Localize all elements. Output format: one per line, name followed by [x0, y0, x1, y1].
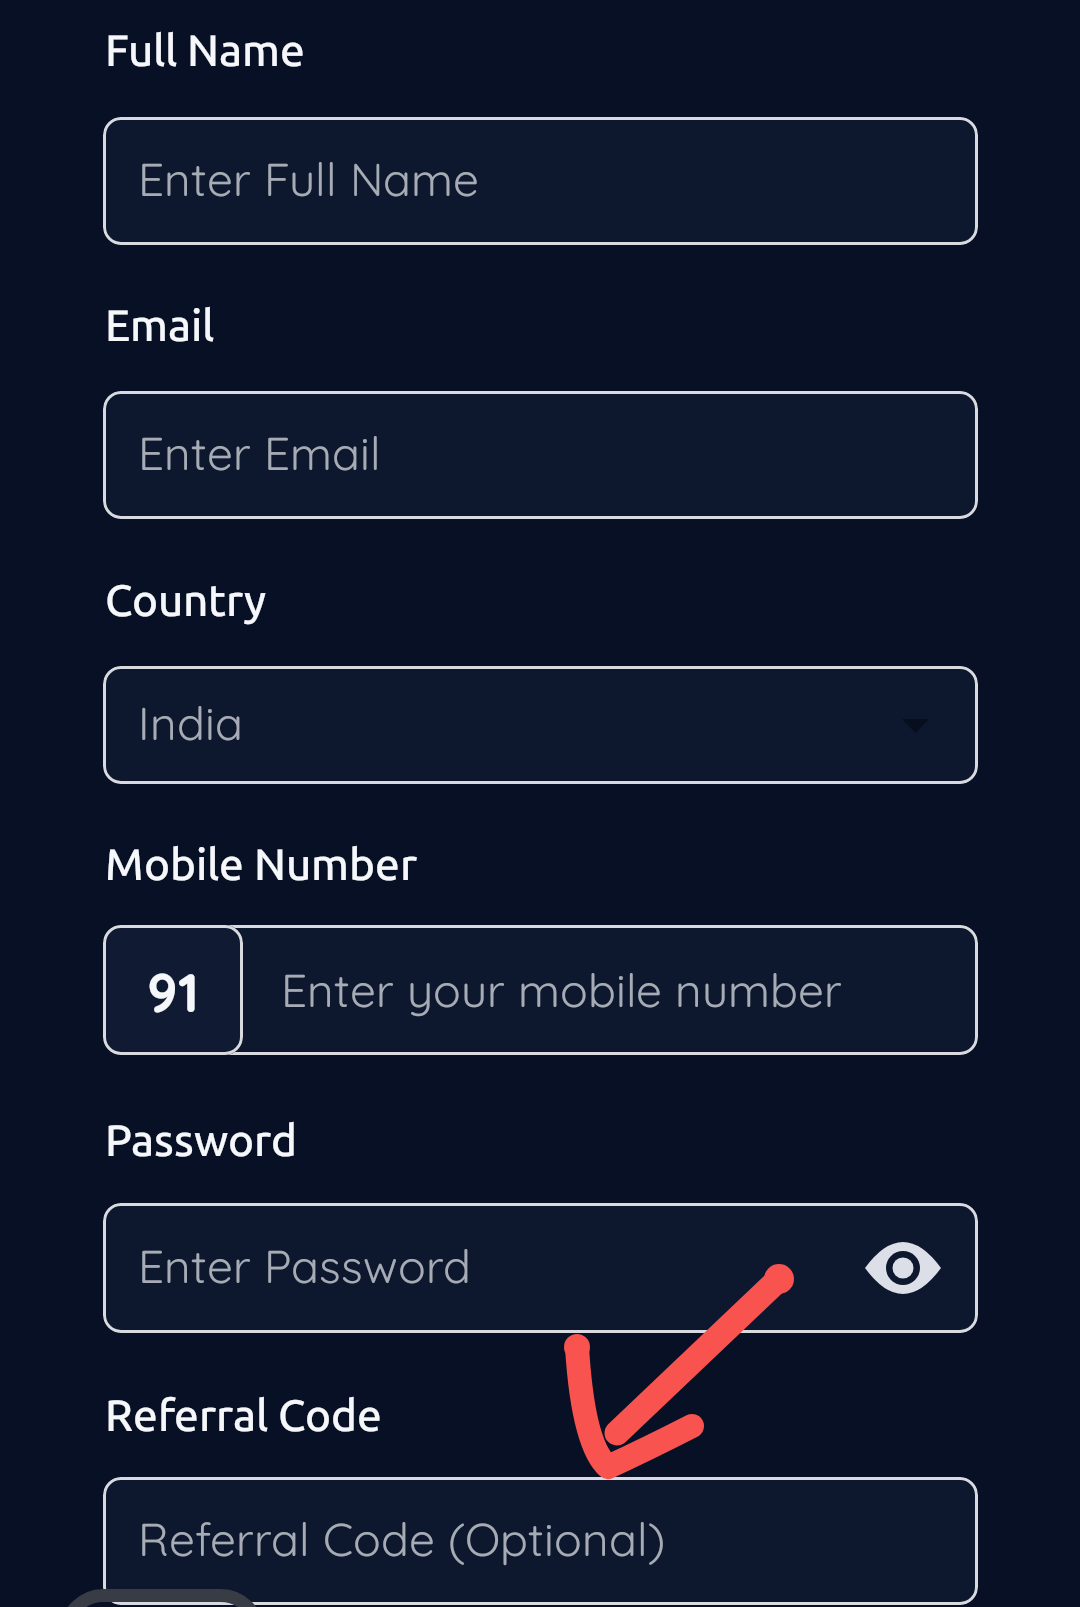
button[interactable] — [103, 117, 978, 245]
button[interactable] — [103, 391, 978, 519]
button[interactable] — [103, 925, 243, 1055]
button[interactable] — [103, 925, 978, 1055]
button[interactable] — [103, 1477, 978, 1605]
button[interactable] — [103, 1203, 978, 1333]
button[interactable] — [103, 666, 978, 784]
